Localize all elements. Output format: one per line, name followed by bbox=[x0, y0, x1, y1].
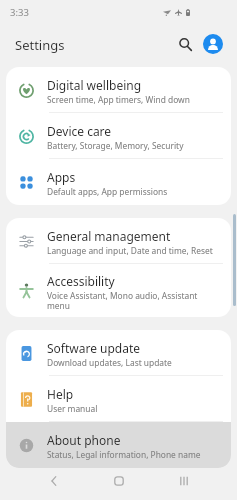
button[interactable]: Apps bbox=[6, 159, 231, 205]
staticText: Battery, Storage, Memory, Security bbox=[47, 140, 184, 151]
button[interactable]: Software update bbox=[6, 330, 231, 376]
button[interactable]: Home bbox=[109, 471, 129, 491]
staticText: Digital wellbeing bbox=[47, 77, 142, 93]
staticText: 3:33 bbox=[10, 6, 29, 19]
staticText: Apps bbox=[47, 169, 76, 185]
staticText: Settings bbox=[15, 36, 65, 54]
button[interactable]: Device care bbox=[6, 113, 231, 159]
button[interactable]: Digital wellbeing bbox=[6, 67, 231, 113]
staticText: Download updates, Last update bbox=[47, 357, 172, 368]
staticText: Screen time, App timers, Wind down bbox=[47, 94, 190, 105]
button[interactable]: Search bbox=[173, 32, 197, 56]
staticText: Status, Legal information, Phone name bbox=[47, 449, 201, 460]
button[interactable]: General management bbox=[6, 218, 231, 264]
staticText: General management bbox=[47, 228, 171, 244]
button[interactable]: Back bbox=[44, 471, 64, 491]
staticText: Voice Assistant, Mono audio, Assistant m… bbox=[47, 290, 215, 311]
staticText: About phone bbox=[47, 432, 121, 448]
staticText: User manual bbox=[47, 403, 98, 414]
button[interactable]: About phone bbox=[6, 422, 231, 468]
button[interactable]: Accessibility bbox=[6, 264, 231, 317]
button[interactable]: Help bbox=[6, 376, 231, 422]
button[interactable]: Account bbox=[203, 34, 223, 54]
staticText: Accessibility bbox=[47, 273, 115, 289]
staticText: Language and input, Date and time, Reset bbox=[47, 245, 213, 256]
staticText: Device care bbox=[47, 123, 112, 139]
staticText: Software update bbox=[47, 340, 141, 356]
staticText: Help bbox=[47, 386, 74, 402]
staticText: Default apps, App permissions bbox=[47, 186, 168, 197]
button[interactable]: Recent apps bbox=[174, 471, 194, 491]
